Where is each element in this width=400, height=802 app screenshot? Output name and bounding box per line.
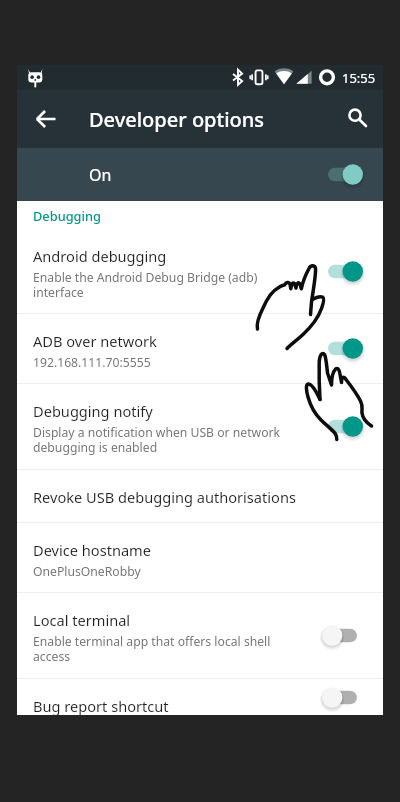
staticText: Device hostname	[33, 540, 151, 560]
staticText: 15:55	[342, 69, 376, 87]
staticText: Developer options	[89, 106, 265, 133]
staticText: ADB over network	[33, 331, 157, 351]
staticText: Enable the Android Debug Bridge (adb) in…	[33, 269, 258, 301]
staticText: Debugging	[33, 207, 101, 224]
staticText: Revoke USB debugging authorisations	[33, 487, 296, 507]
staticText: 192.168.111.70:5555	[33, 354, 151, 371]
staticText: On	[89, 164, 112, 186]
button[interactable]: Debugging notify	[17, 384, 383, 469]
button[interactable]: On	[17, 148, 383, 201]
staticText: Enable terminal app that offers local sh…	[33, 633, 271, 665]
staticText: Display a notification when USB or netwo…	[33, 424, 281, 456]
button[interactable]: Search	[333, 95, 381, 143]
button[interactable]: Bug report shortcut	[17, 679, 383, 715]
button[interactable]: Revoke USB debugging authorisations	[17, 470, 383, 522]
button[interactable]: Back	[22, 95, 70, 143]
staticText: OnePlusOneRobby	[33, 563, 141, 580]
button[interactable]: Android debugging	[17, 229, 383, 313]
button[interactable]: Local terminal	[17, 593, 383, 678]
button[interactable]: ADB over network	[17, 314, 383, 383]
staticText: Android debugging	[33, 246, 167, 266]
staticText: Bug report shortcut	[33, 696, 169, 715]
button[interactable]: Device hostname	[17, 523, 383, 592]
staticText: Debugging notify	[33, 401, 153, 421]
staticText: Local terminal	[33, 610, 131, 630]
